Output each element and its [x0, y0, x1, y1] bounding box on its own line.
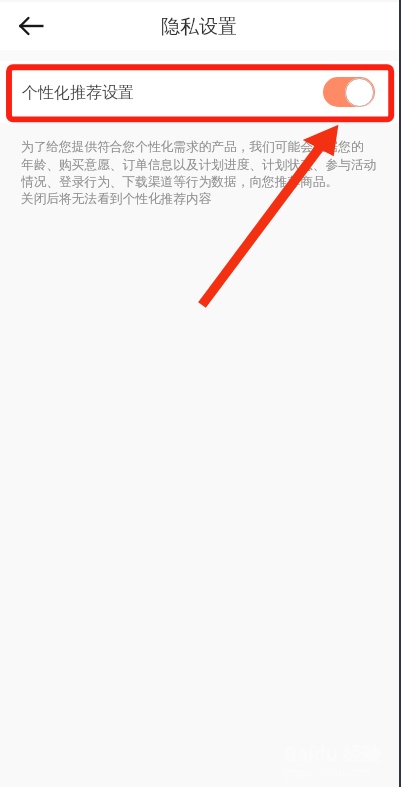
- button[interactable]: 个性化推荐设置开关: [323, 77, 375, 107]
- staticText: 个性化推荐设置: [22, 83, 134, 103]
- staticText: 隐私设置: [161, 15, 237, 39]
- button[interactable]: 返回: [10, 9, 42, 41]
- staticText: 为了给您提供符合您个性化需求的产品，我们可能会根据您的 年龄、购买意愿、订单信息…: [21, 139, 377, 207]
- button[interactable]: 个性化推荐设置: [0, 61, 401, 123]
